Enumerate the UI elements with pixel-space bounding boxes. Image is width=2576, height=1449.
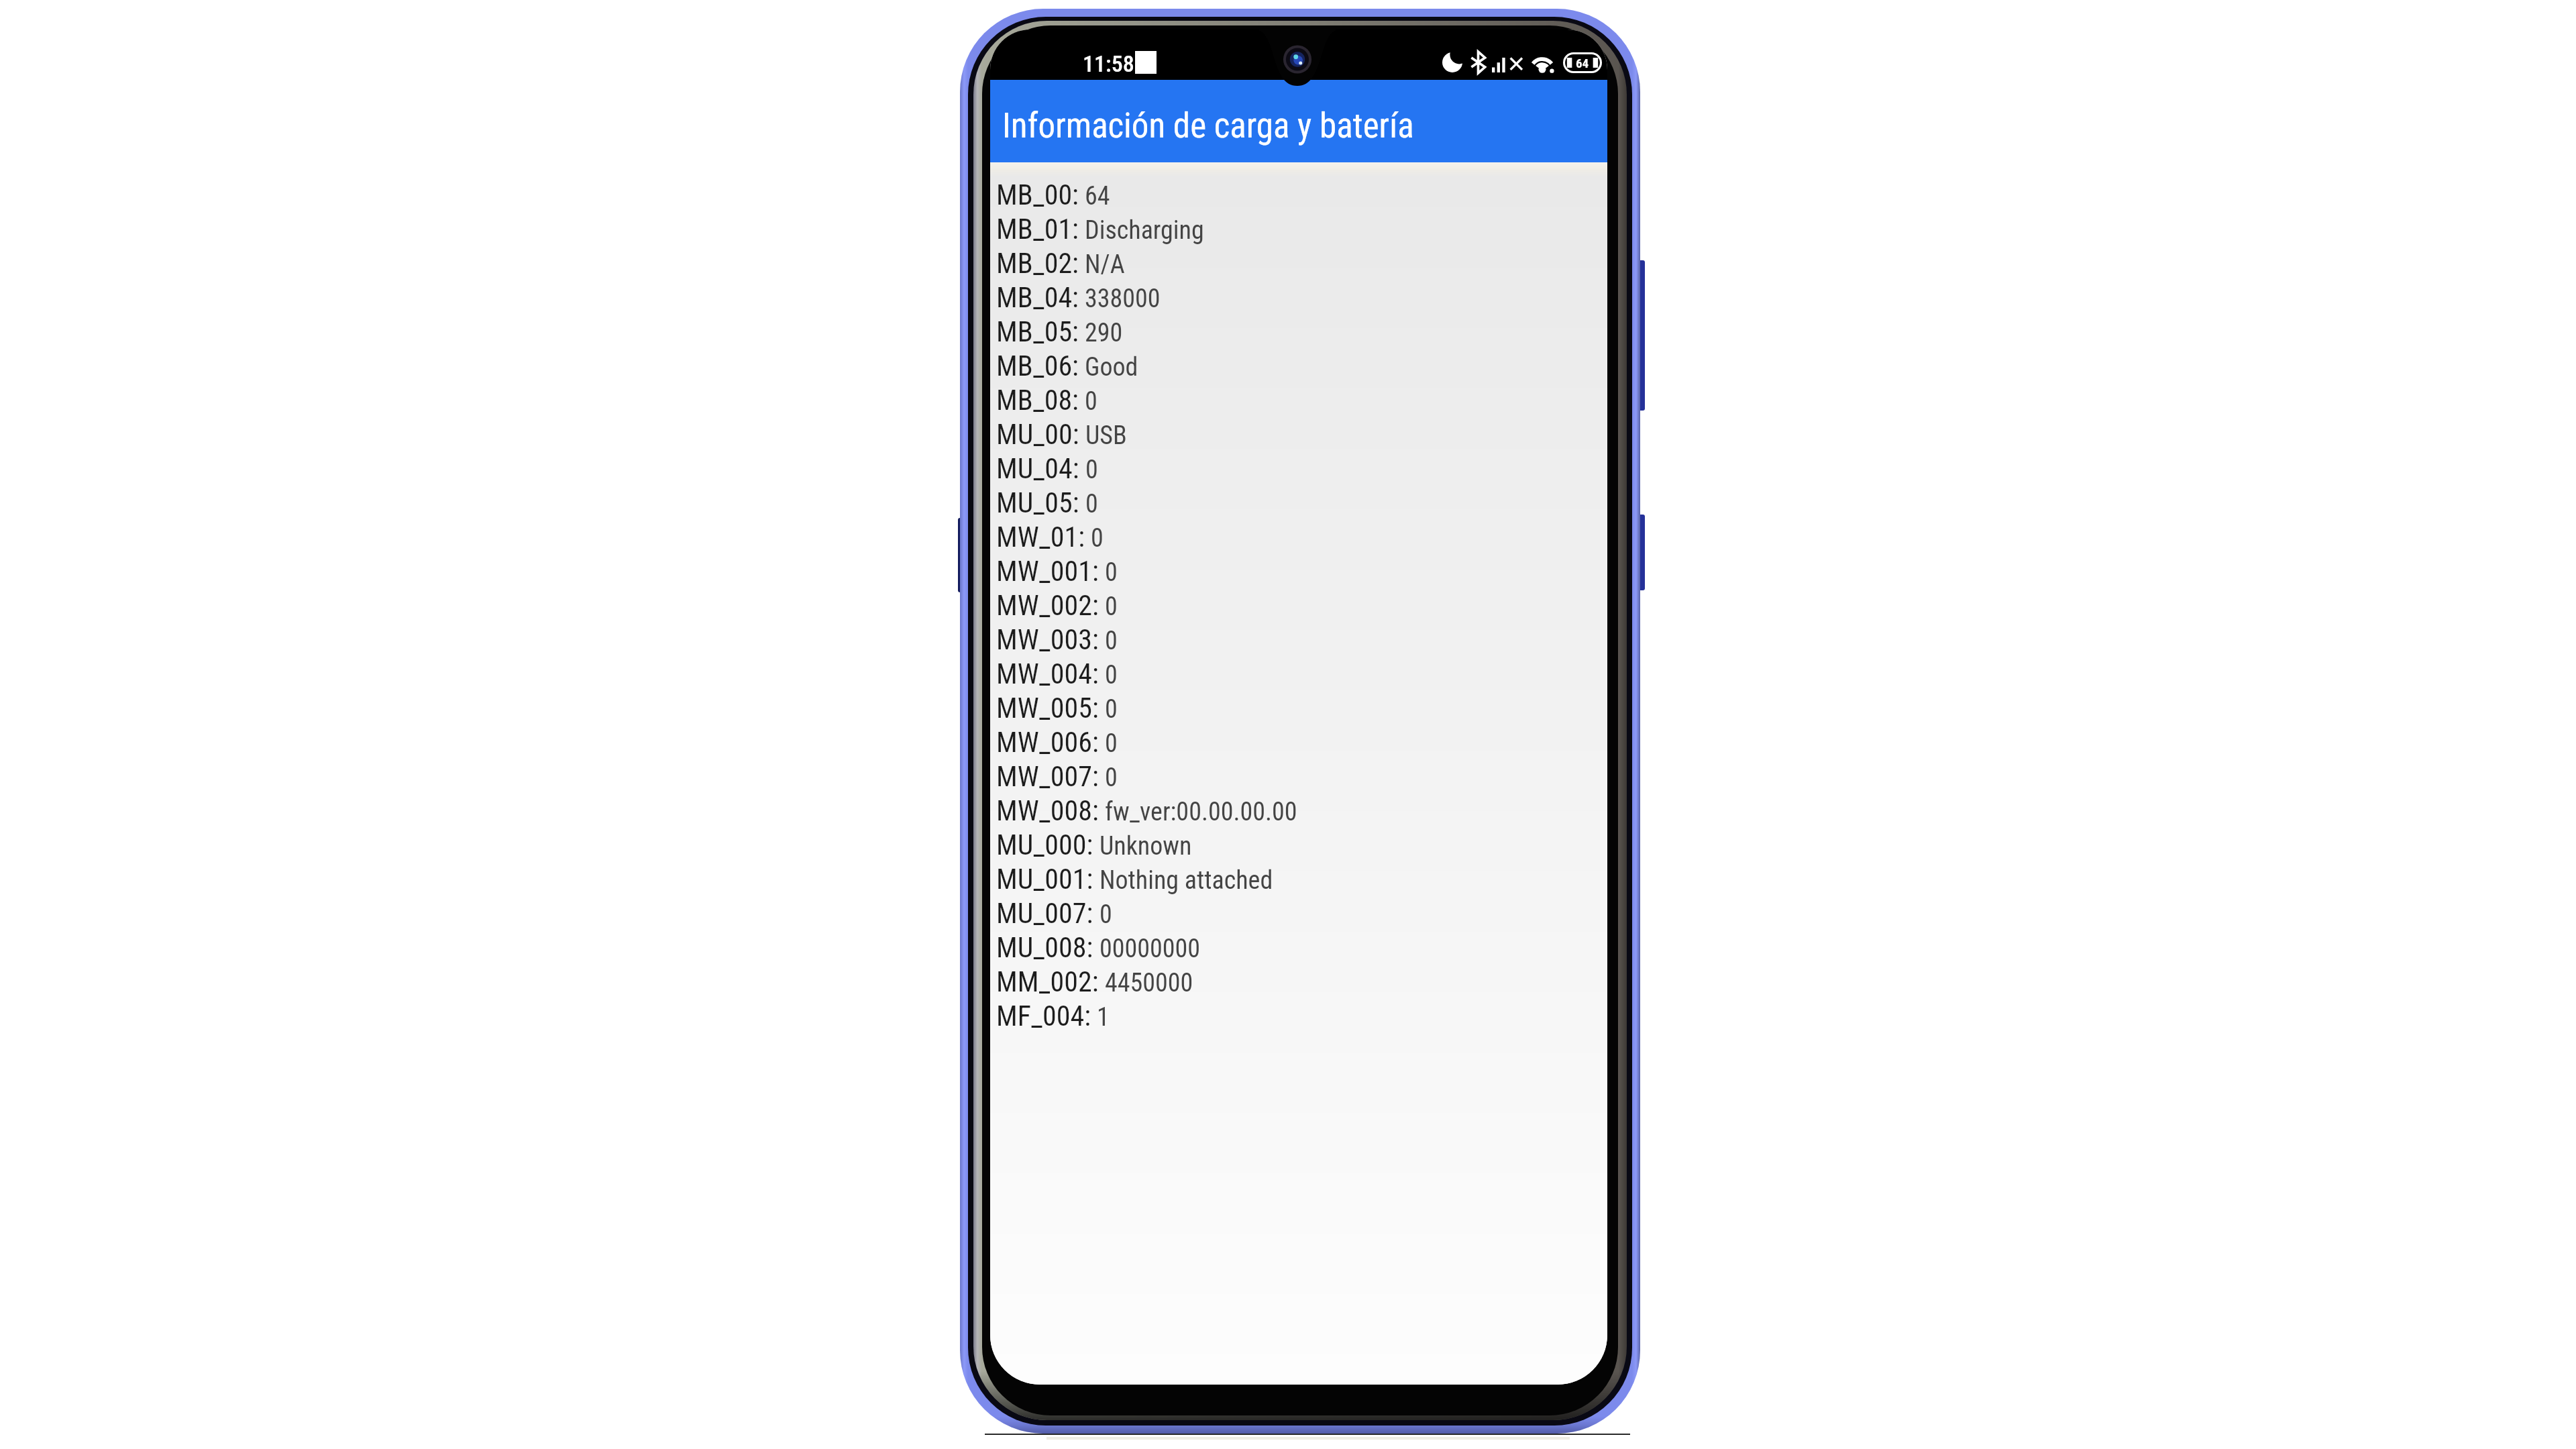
staticText: MU_05: xyxy=(996,486,1079,519)
other: Wi-Fi xyxy=(1529,53,1556,72)
staticText: MB_02: xyxy=(996,247,1079,280)
staticText: 0 xyxy=(1085,455,1098,485)
button[interactable]: MB_01: xyxy=(996,212,1607,246)
staticText: 0 xyxy=(1105,729,1118,759)
staticText: MU_00: xyxy=(996,418,1079,451)
staticText: fw_ver:00.00.00.00 xyxy=(1105,797,1297,827)
other: Bluetooth xyxy=(1470,52,1486,73)
staticText: 338000 xyxy=(1085,284,1161,314)
button[interactable]: MW_006: xyxy=(996,725,1607,759)
button[interactable]: MM_002: xyxy=(996,965,1607,999)
button[interactable]: MW_004: xyxy=(996,657,1607,691)
button[interactable]: MW_001: xyxy=(996,554,1607,588)
staticText: MM_002: xyxy=(996,965,1099,998)
button[interactable]: MB_05: xyxy=(996,315,1607,349)
staticText: MW_001: xyxy=(996,555,1099,588)
staticText: Nothing attached xyxy=(1099,865,1273,896)
staticText: MU_000: xyxy=(996,828,1093,861)
staticText: MW_008: xyxy=(996,794,1099,827)
staticText: 00000000 xyxy=(1099,934,1201,964)
staticText: 0 xyxy=(1105,626,1118,656)
staticText: MW_005: xyxy=(996,692,1099,724)
staticText: 64 xyxy=(1085,181,1110,211)
staticText: MW_007: xyxy=(996,760,1099,793)
other: Do not disturb xyxy=(1442,52,1462,72)
button[interactable]: MU_04: xyxy=(996,451,1607,486)
staticText: MB_05: xyxy=(996,315,1079,348)
button[interactable]: MW_005: xyxy=(996,691,1607,725)
other: Mobile signal xyxy=(1492,53,1523,72)
staticText: MU_04: xyxy=(996,452,1079,485)
staticText: MB_01: xyxy=(996,213,1079,246)
staticText: 64 xyxy=(1576,56,1589,70)
staticText: MF_004: xyxy=(996,1000,1091,1032)
staticText: MW_003: xyxy=(996,623,1099,656)
staticText: USB xyxy=(1085,421,1127,451)
button[interactable]: MU_007: xyxy=(996,896,1607,930)
button[interactable]: MU_05: xyxy=(996,486,1607,520)
button[interactable]: MB_02: xyxy=(996,246,1607,280)
button[interactable]: MU_00: xyxy=(996,417,1607,451)
staticText: MB_06: xyxy=(996,350,1079,382)
staticText: Información de carga y batería xyxy=(1002,106,1414,146)
staticText: MW_01: xyxy=(996,521,1085,553)
staticText: Good xyxy=(1085,352,1138,382)
staticText: MW_006: xyxy=(996,726,1099,759)
staticText: N/A xyxy=(1085,250,1125,280)
staticText: MW_004: xyxy=(996,657,1099,690)
button[interactable]: MW_008: xyxy=(996,794,1607,828)
staticText: 1 xyxy=(1097,1002,1110,1032)
staticText: MU_001: xyxy=(996,863,1093,896)
staticText: MW_002: xyxy=(996,589,1099,622)
staticText: 0 xyxy=(1105,592,1118,622)
staticText: 0 xyxy=(1105,694,1118,724)
button[interactable]: MB_04: xyxy=(996,280,1607,315)
button[interactable]: MU_000: xyxy=(996,828,1607,862)
staticText: 290 xyxy=(1085,318,1123,348)
staticText: MB_00: xyxy=(996,178,1079,211)
staticText: Unknown xyxy=(1099,831,1192,861)
button[interactable]: MB_08: xyxy=(996,383,1607,417)
staticText: 4450000 xyxy=(1105,968,1193,998)
button[interactable]: MU_001: xyxy=(996,862,1607,896)
staticText: MB_08: xyxy=(996,384,1079,417)
other: Battery 64 percent xyxy=(1563,52,1602,73)
button[interactable]: MW_003: xyxy=(996,623,1607,657)
button[interactable]: MB_00: xyxy=(996,178,1607,212)
button[interactable]: MW_01: xyxy=(996,520,1607,554)
staticText: 0 xyxy=(1105,763,1118,793)
staticText: 0 xyxy=(1105,660,1118,690)
staticText: 0 xyxy=(1105,557,1118,588)
staticText: 0 xyxy=(1085,489,1098,519)
button[interactable]: MB_06: xyxy=(996,349,1607,383)
staticText: 0 xyxy=(1091,523,1104,553)
button[interactable]: MW_007: xyxy=(996,759,1607,794)
staticText: MB_04: xyxy=(996,281,1079,314)
staticText: MU_007: xyxy=(996,897,1093,930)
button[interactable]: Información de carga y batería xyxy=(990,80,1607,162)
staticText: 0 xyxy=(1085,386,1097,417)
button[interactable]: MF_004: xyxy=(996,999,1607,1033)
staticText: MU_008: xyxy=(996,931,1093,964)
staticText: 11:58 xyxy=(1083,50,1134,77)
staticText: 0 xyxy=(1099,900,1112,930)
button[interactable]: MW_002: xyxy=(996,588,1607,623)
button[interactable]: MU_008: xyxy=(996,930,1607,965)
staticText: Discharging xyxy=(1085,215,1204,246)
